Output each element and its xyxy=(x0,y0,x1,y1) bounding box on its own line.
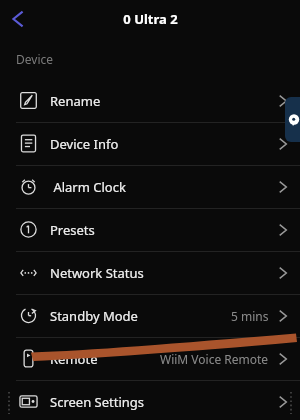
button[interactable]: Screen Settings xyxy=(0,380,300,420)
button[interactable]: Device Info xyxy=(0,122,300,165)
button[interactable]: Assistant xyxy=(285,97,300,142)
staticText: 0 Ultra 2 xyxy=(123,10,178,28)
staticText: 5 mins xyxy=(231,308,269,324)
staticText: Screen Settings xyxy=(50,393,145,411)
button[interactable]: Standby Mode xyxy=(0,294,300,337)
button[interactable]: Remote xyxy=(0,337,300,380)
staticText: Standby Mode xyxy=(50,307,138,325)
button[interactable]: Network Status xyxy=(0,251,300,294)
staticText: Remote xyxy=(50,350,98,368)
staticText: Device xyxy=(16,51,54,67)
staticText: Rename xyxy=(50,92,101,110)
button[interactable]: Back xyxy=(4,6,30,32)
button[interactable]: Alarm Clock xyxy=(0,165,300,208)
button[interactable]: Rename xyxy=(0,79,300,122)
staticText: WiiM Voice Remote xyxy=(160,351,269,367)
staticText: Device Info xyxy=(50,135,119,153)
staticText: Alarm Clock xyxy=(50,178,126,196)
staticText: Presets xyxy=(50,221,95,239)
staticText: Network Status xyxy=(50,264,144,282)
button[interactable]: Presets xyxy=(0,208,300,251)
